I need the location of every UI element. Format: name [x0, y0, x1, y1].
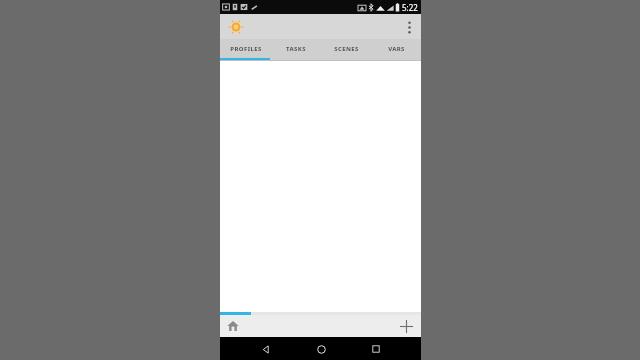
staticText: TASKS — [286, 45, 306, 53]
button[interactable]: Recents — [365, 338, 387, 360]
button[interactable]: PROFILES — [220, 39, 271, 58]
button[interactable]: More options — [400, 15, 418, 39]
button[interactable]: VARS — [371, 39, 421, 58]
button[interactable]: TASKS — [271, 39, 321, 58]
button[interactable]: Home — [223, 316, 243, 336]
button[interactable]: App icon — [227, 18, 245, 36]
button[interactable]: Add — [396, 316, 416, 336]
staticText: 5:22 — [402, 2, 418, 13]
staticText: VARS — [388, 45, 405, 53]
button[interactable]: Home — [310, 338, 332, 360]
staticText: SCENES — [334, 45, 359, 53]
button[interactable]: Back — [254, 338, 276, 360]
button[interactable]: SCENES — [321, 39, 371, 58]
staticText: PROFILES — [230, 45, 262, 53]
